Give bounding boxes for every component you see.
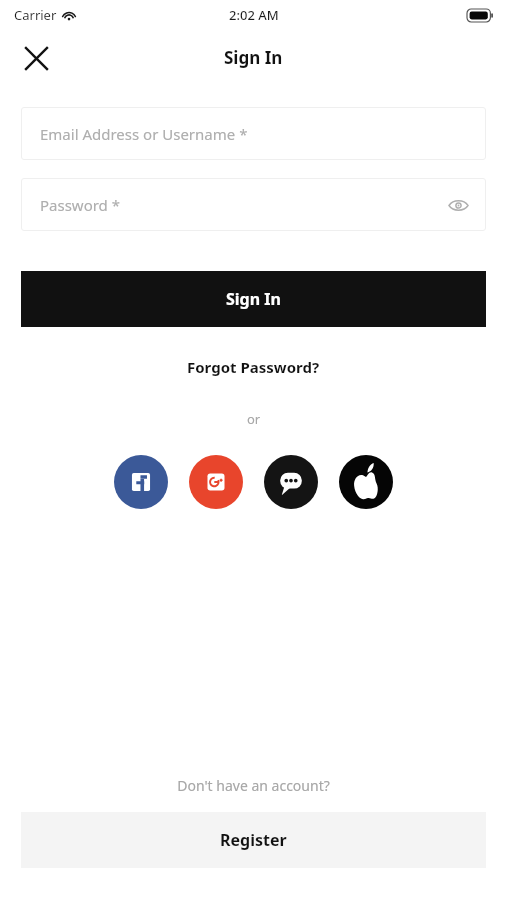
staticText: 2:02 AM (229, 6, 279, 24)
staticText: Register (220, 829, 287, 851)
button[interactable]: Password * (21, 178, 486, 231)
button[interactable]: Sign In (21, 271, 486, 327)
staticText: Sign In (226, 288, 281, 310)
staticText: or (247, 410, 261, 428)
button[interactable]: Show password (442, 189, 474, 221)
staticText: Forgot Password? (187, 357, 320, 377)
button[interactable]: Forgot Password? (177, 353, 330, 381)
button[interactable]: Register (21, 812, 486, 868)
staticText: Carrier (14, 6, 57, 24)
button[interactable]: Sign in with Google (189, 455, 243, 509)
staticText: Sign In (224, 46, 283, 69)
button[interactable]: Sign in with Facebook (114, 455, 168, 509)
button[interactable]: Sign in with chat (264, 455, 318, 509)
button[interactable]: Close (16, 38, 56, 78)
staticText: Email Address or Username * (40, 124, 248, 144)
staticText: Password * (40, 195, 121, 215)
staticText: Don't have an account? (21, 776, 486, 795)
button[interactable]: Email Address or Username * (21, 107, 486, 160)
button[interactable]: Sign in with Apple (339, 455, 393, 509)
